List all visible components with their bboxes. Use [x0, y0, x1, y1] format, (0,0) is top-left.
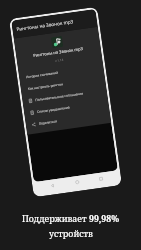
staticText: устройств — [49, 228, 93, 240]
button[interactable]: Поделиться — [25, 108, 111, 132]
staticText: Поделиться — [38, 119, 58, 126]
button[interactable]: Home — [72, 176, 83, 188]
staticText: История скачиваний — [26, 71, 59, 79]
button[interactable]: Пользовательское соглашение — [22, 84, 107, 108]
staticText: Пользовательское соглашение — [35, 91, 83, 102]
staticText: 99,98% — [89, 213, 120, 225]
staticText: Поддерживает — [22, 213, 89, 225]
button[interactable]: Список уведомлений — [23, 96, 109, 120]
staticText: Рингтоны на Звонок mp3 — [16, 18, 74, 32]
button[interactable]: Recent apps — [95, 173, 107, 184]
button[interactable]: Back — [47, 180, 58, 191]
staticText: v 1.14 — [55, 58, 64, 63]
button[interactable]: История скачиваний — [18, 60, 104, 84]
staticText: Как настроить рингтон — [28, 82, 64, 91]
staticText: Список уведомлений — [37, 105, 70, 114]
staticText: Рингтоны на Звонок mp3 — [33, 46, 84, 59]
button[interactable]: Как настроить рингтон — [20, 72, 106, 96]
